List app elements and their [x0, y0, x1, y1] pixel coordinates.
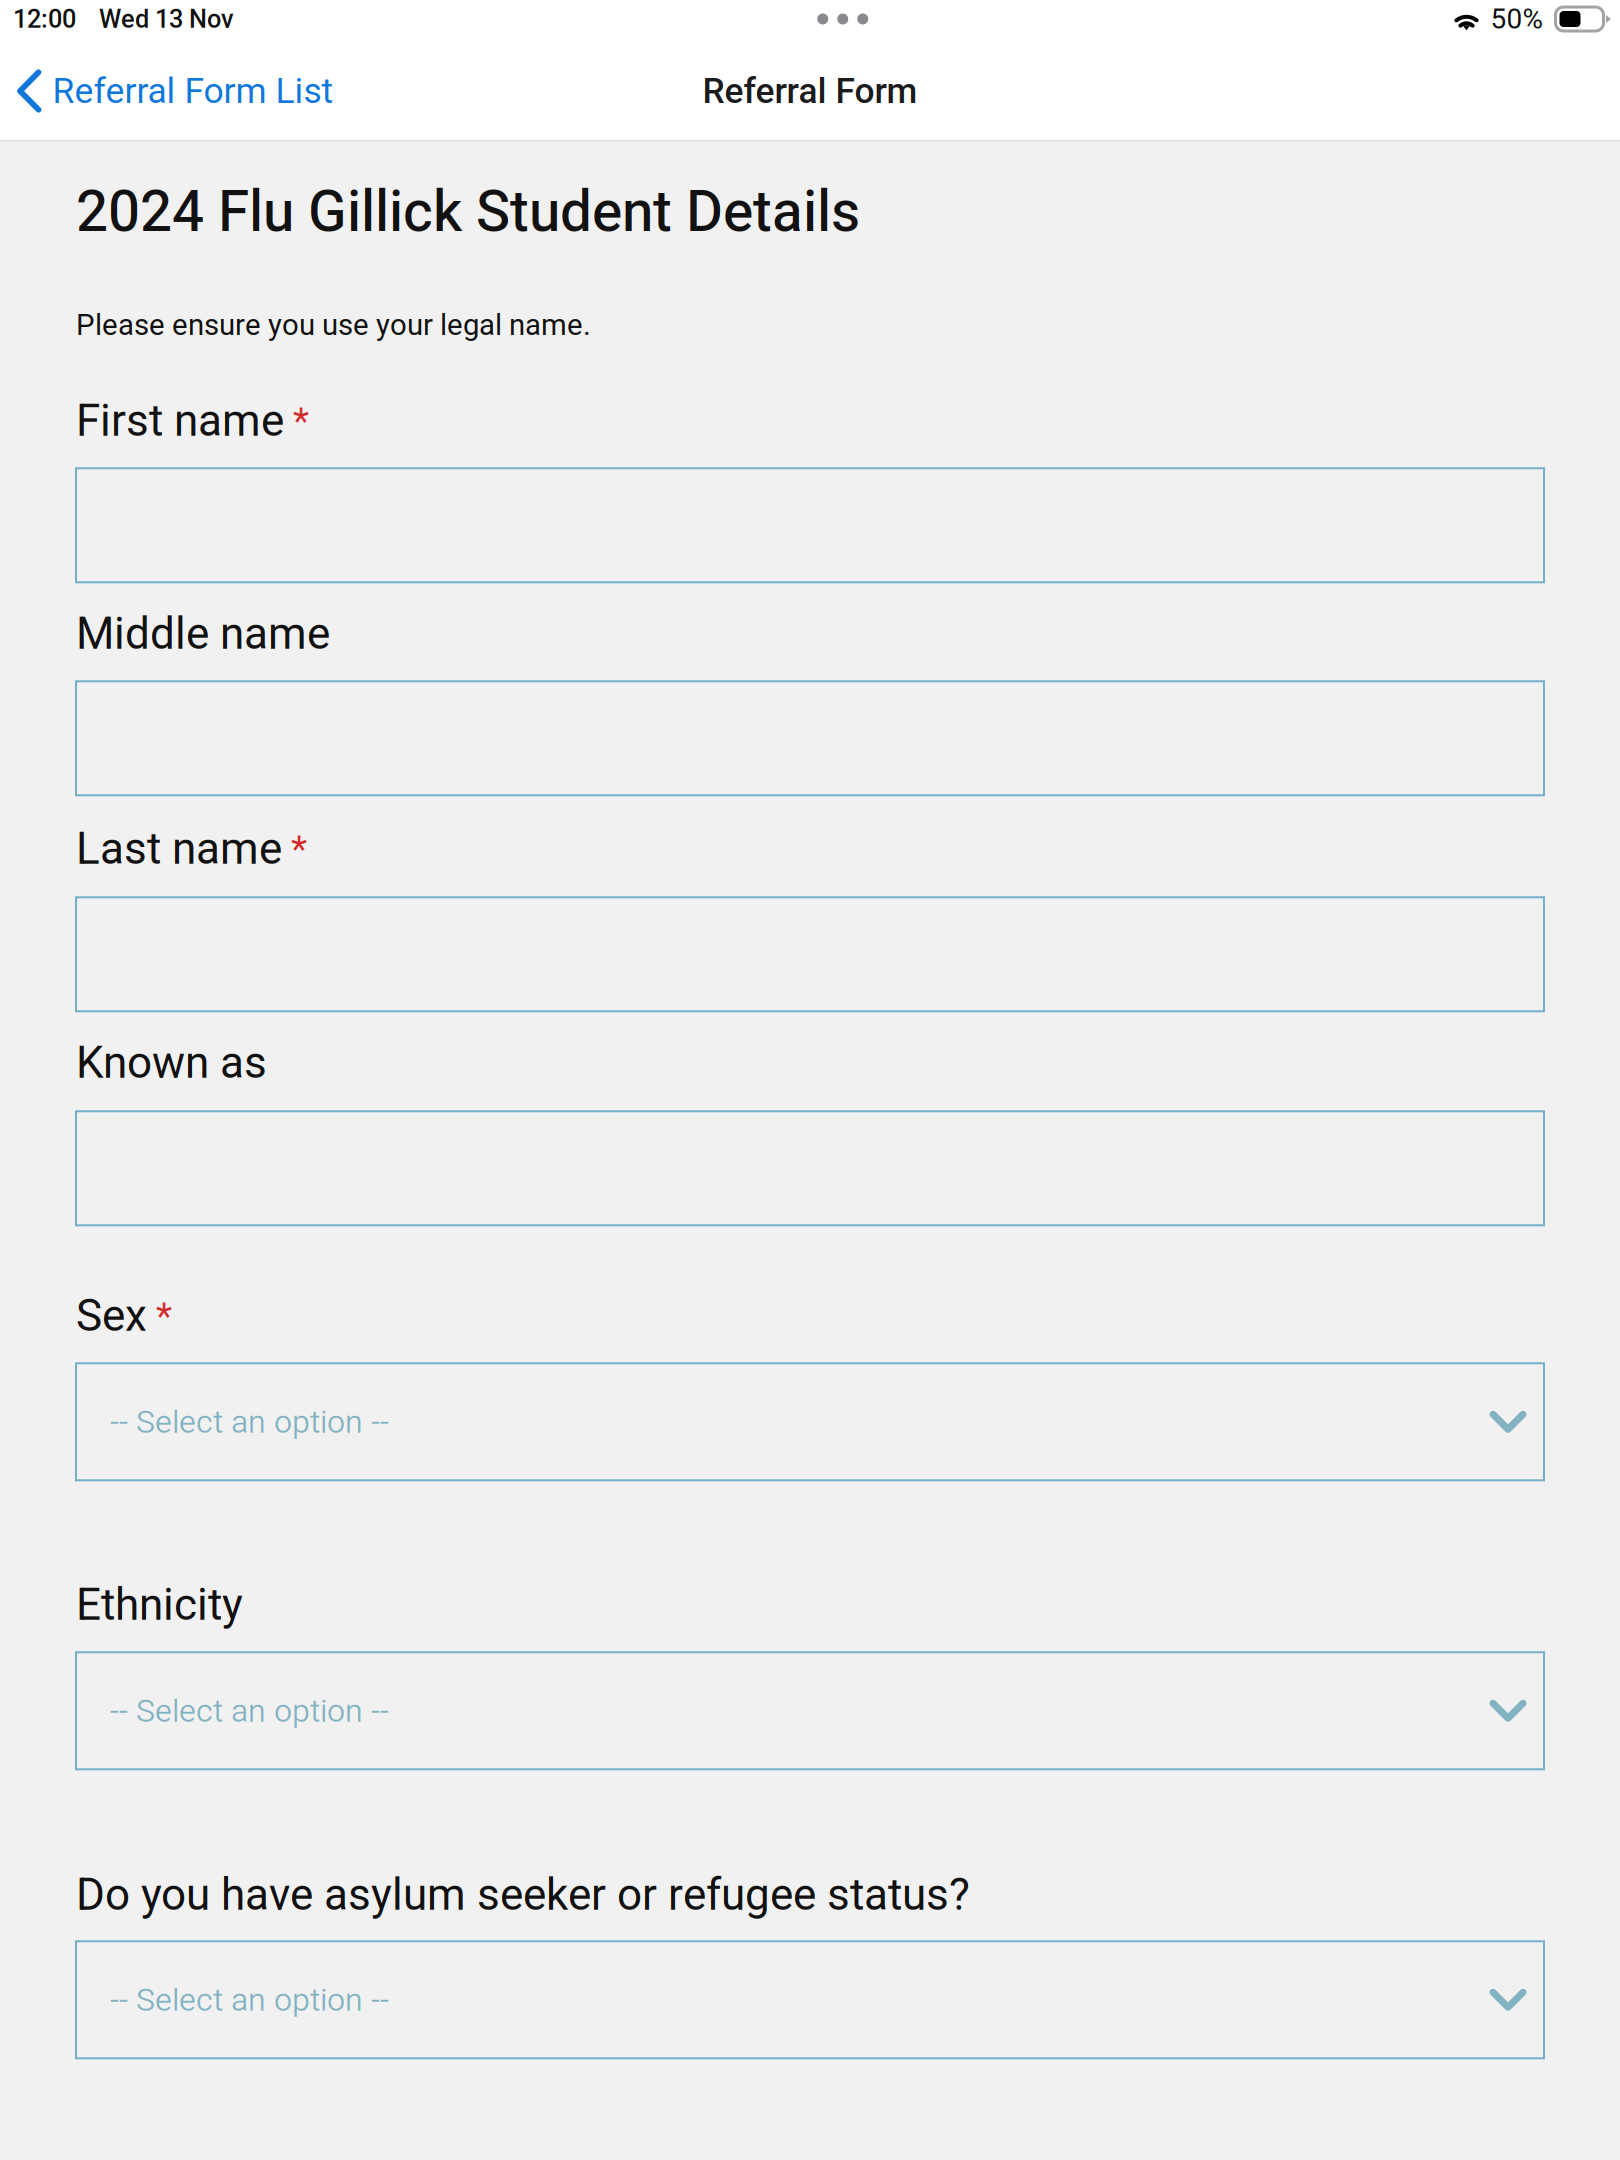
staticText: Ethnicity — [76, 1579, 243, 1631]
button[interactable]: Middle name — [76, 681, 1544, 795]
staticText: Referral Form — [702, 70, 917, 112]
staticText: Sex — [76, 1290, 147, 1342]
staticText: -- Select an option -- — [110, 1981, 389, 2018]
staticText: Please ensure you use your legal name. — [76, 308, 591, 342]
staticText: Known as — [76, 1037, 267, 1089]
button[interactable]: Do you have asylum seeker or refugee sta… — [76, 1941, 1544, 2058]
staticText: Middle name — [76, 608, 330, 660]
staticText: Last name — [76, 823, 282, 875]
button[interactable]: Referral Form List — [17, 69, 333, 113]
button[interactable]: Last name — [76, 897, 1544, 1011]
staticText: Wed 13 Nov — [99, 4, 234, 34]
staticText: 12:00 — [13, 4, 76, 34]
staticText: Referral Form List — [52, 70, 333, 112]
staticText: First name — [76, 395, 284, 447]
staticText: 2024 Flu Gillick Student Details — [76, 178, 860, 245]
staticText: -- Select an option -- — [110, 1692, 389, 1729]
button[interactable]: Sex — [76, 1363, 1544, 1480]
button[interactable]: Known as — [76, 1111, 1544, 1225]
staticText: * — [156, 1294, 172, 1338]
staticText: -- Select an option -- — [110, 1403, 389, 1440]
staticText: * — [293, 399, 309, 443]
button[interactable]: Ethnicity — [76, 1652, 1544, 1769]
staticText: Do you have asylum seeker or refugee sta… — [76, 1869, 970, 1921]
staticText: 50% — [1490, 3, 1543, 35]
button[interactable]: First name — [76, 468, 1544, 582]
staticText: * — [291, 827, 307, 871]
